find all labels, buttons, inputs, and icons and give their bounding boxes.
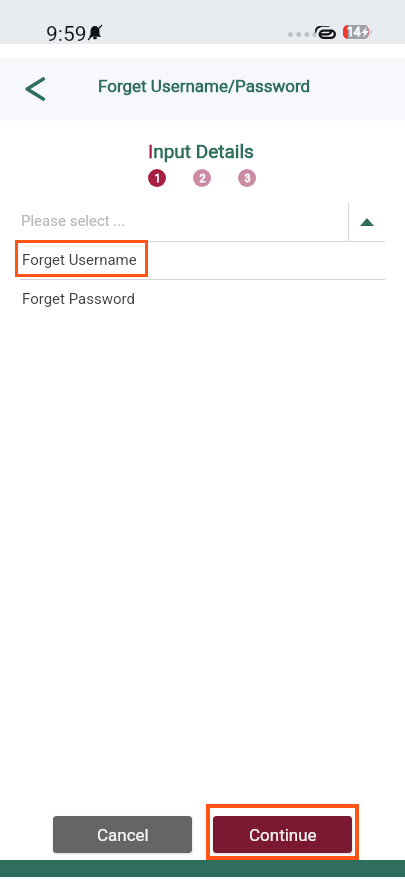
button[interactable]: 3 [238, 169, 256, 187]
staticText: 1 [154, 172, 161, 185]
staticText: 9:59 [46, 22, 87, 47]
button[interactable]: Forget Password [13, 282, 383, 316]
staticText: 2 [199, 172, 206, 185]
button[interactable]: Back [14, 67, 58, 111]
button[interactable]: Collapse list [349, 203, 385, 241]
button[interactable]: 1 [148, 169, 166, 187]
staticText: Input Details [148, 140, 254, 162]
staticText: Forget Username/Password [98, 76, 311, 96]
button[interactable]: Forget Username [15, 240, 148, 277]
staticText: Cancel [97, 825, 149, 845]
staticText: 3 [244, 172, 251, 185]
staticText: Please select ... [21, 212, 126, 230]
staticText: Forget Username [22, 251, 137, 269]
button[interactable]: Cancel [53, 816, 192, 853]
staticText: 14 [347, 25, 361, 39]
button[interactable]: Continue [213, 816, 352, 853]
button[interactable]: 2 [193, 169, 211, 187]
staticText: Forget Password [22, 290, 135, 308]
staticText: Continue [249, 825, 317, 845]
